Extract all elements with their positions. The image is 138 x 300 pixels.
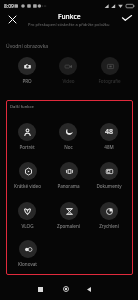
button[interactable]: Close <box>5 12 19 26</box>
staticText: 48M <box>104 144 114 150</box>
button[interactable]: Krátké video <box>7 160 47 191</box>
staticText: Zrychlení <box>99 223 119 229</box>
button[interactable]: Home <box>58 281 74 297</box>
staticText: Fotografie <box>98 78 121 84</box>
staticText: Portrét <box>19 144 35 150</box>
staticText: Noc <box>64 144 73 150</box>
button[interactable]: Klonovat <box>7 238 47 269</box>
staticText: PRO <box>22 78 32 84</box>
staticText: Dokumenty <box>96 183 122 189</box>
button[interactable]: Dokumenty <box>89 160 129 191</box>
button[interactable]: Zrychlení <box>89 200 129 231</box>
button[interactable]: 48 <box>89 121 129 152</box>
staticText: Zpomalení <box>57 223 80 229</box>
staticText: Video <box>62 78 75 84</box>
staticText: Krátké video <box>14 183 41 189</box>
staticText: Pro přeskupení stiskněte a přidržte polo… <box>28 22 110 27</box>
button[interactable]: Zpomalení <box>48 200 88 231</box>
button[interactable]: Recents <box>32 281 48 297</box>
staticText: Úvodní obrazovka <box>6 43 49 50</box>
button[interactable]: Noc <box>48 121 88 152</box>
button[interactable]: Done <box>120 11 134 25</box>
staticText: 48 <box>105 127 114 137</box>
button[interactable]: Fotografie <box>89 55 129 86</box>
staticText: Klonovat <box>18 261 37 267</box>
staticText: 8:09 <box>4 3 14 10</box>
button[interactable]: VLOG <box>7 200 47 231</box>
staticText: VLOG <box>21 223 34 229</box>
staticText: Panorama <box>57 183 80 189</box>
button[interactable]: Back <box>81 281 97 297</box>
button[interactable]: Panorama <box>48 160 88 191</box>
staticText: Další funkce <box>10 104 34 110</box>
button[interactable]: Video <box>48 55 88 86</box>
button[interactable]: PRO <box>7 55 47 86</box>
staticText: Funkce <box>58 12 81 21</box>
button[interactable]: Portrét <box>7 121 47 152</box>
